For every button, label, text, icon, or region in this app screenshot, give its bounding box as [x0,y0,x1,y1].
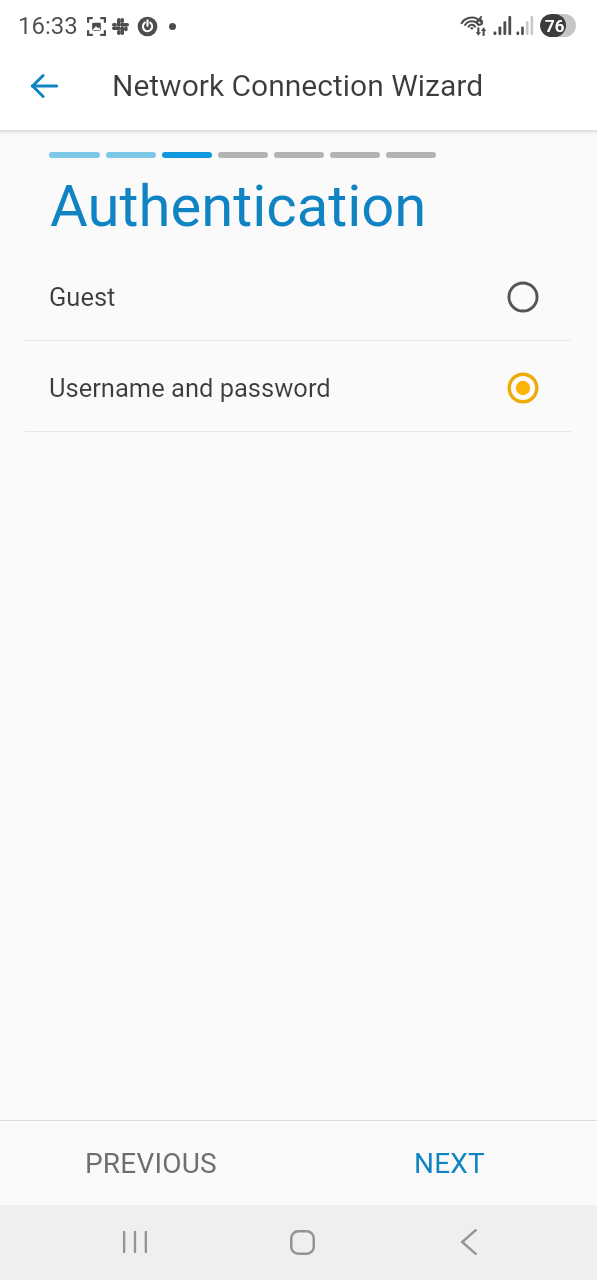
staticText: 76 [545,16,565,36]
staticText: Guest [49,282,116,312]
staticText: NEXT [414,1147,485,1180]
button[interactable]: Username and password [0,341,597,432]
button[interactable]: Recents [111,1218,159,1266]
button[interactable]: PREVIOUS [0,1121,298,1205]
button[interactable]: Guest [0,251,597,341]
button[interactable]: Back [20,64,68,112]
staticText: Username and password [49,373,331,403]
button[interactable]: NEXT [298,1121,597,1205]
staticText: Authentication [50,172,427,240]
button[interactable]: Home [278,1218,326,1266]
staticText: Network Connection Wizard [112,68,484,103]
staticText: PREVIOUS [85,1147,217,1180]
staticText: 16:33 [18,12,78,40]
button[interactable]: Back [445,1218,493,1266]
